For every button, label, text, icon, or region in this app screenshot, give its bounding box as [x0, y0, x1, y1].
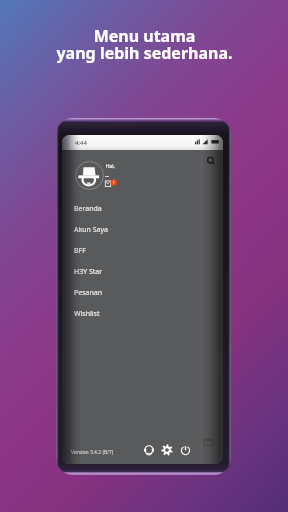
button[interactable]: Beranda: [62, 198, 200, 219]
button[interactable]: Hai,: [62, 150, 200, 198]
staticText: BFF: [74, 246, 86, 256]
button[interactable]: Messages: [104, 178, 119, 188]
staticText: Version 3.4.2 (B/T): [71, 449, 114, 456]
staticText: Menu utama yang lebih sederhana.: [56, 25, 233, 63]
staticText: H3Y Star: [74, 267, 103, 277]
staticText: Akun Saya: [74, 225, 108, 235]
staticText: 4:44: [75, 139, 87, 147]
staticText: Wishlist: [74, 309, 100, 319]
button[interactable]: Customer support: [144, 445, 154, 455]
button[interactable]: Settings: [161, 444, 173, 456]
staticText: Pesanan: [74, 288, 103, 298]
button[interactable]: Pesanan: [62, 282, 200, 303]
button[interactable]: Wishlist: [62, 303, 200, 324]
button[interactable]: Akun Saya: [62, 219, 200, 240]
staticText: Hai,: [106, 163, 115, 170]
button[interactable]: BFF: [62, 240, 200, 261]
button[interactable]: Search: [206, 156, 216, 166]
button[interactable]: H3Y Star: [62, 261, 200, 282]
button[interactable]: Log out: [180, 445, 191, 456]
staticText: Beranda: [74, 204, 102, 214]
